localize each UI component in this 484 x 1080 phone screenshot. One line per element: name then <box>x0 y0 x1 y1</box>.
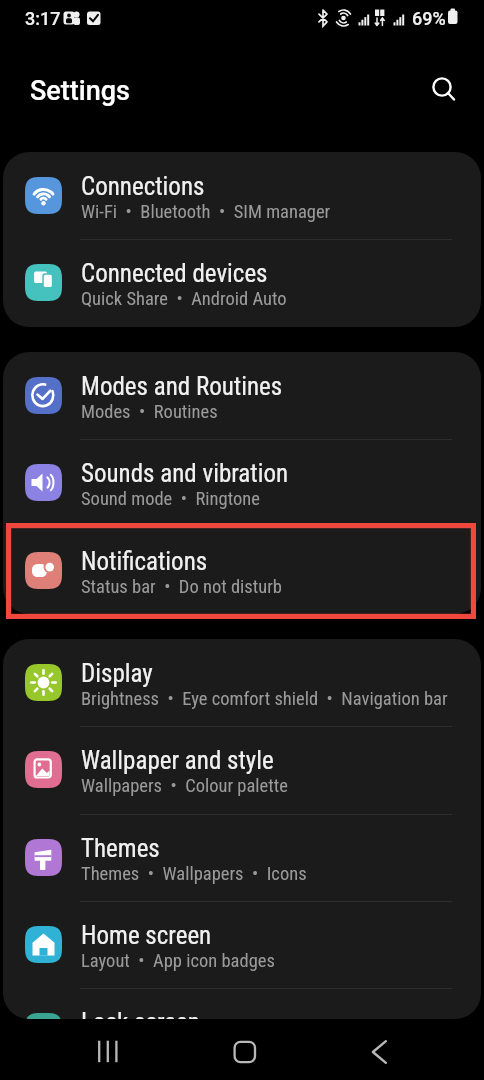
staticText: Wi-Fi • Bluetooth • SIM manager <box>81 201 331 223</box>
button[interactable]: Connections <box>3 152 481 239</box>
staticText: Layout • App icon badges <box>81 950 275 972</box>
staticText: Wallpapers • Colour palette <box>81 775 288 797</box>
staticText: Brightness • Eye comfort shield • Naviga… <box>81 688 448 710</box>
staticText: Notifications <box>81 547 208 576</box>
staticText: Home screen <box>81 921 212 950</box>
button[interactable]: Home screen <box>3 901 481 988</box>
staticText: Themes • Wallpapers • Icons <box>81 863 307 885</box>
staticText: Display <box>81 659 153 688</box>
button[interactable]: Notifications <box>3 527 481 614</box>
button[interactable]: Back <box>356 1030 400 1074</box>
staticText: Wallpaper and style <box>81 746 274 775</box>
staticText: 69% <box>412 8 446 29</box>
button[interactable]: Lock screen <box>3 988 481 1019</box>
staticText: Quick Share • Android Auto <box>81 288 287 310</box>
button[interactable]: Home <box>222 1030 266 1074</box>
staticText: Sound mode • Ringtone <box>81 488 260 510</box>
staticText: Themes <box>81 834 160 863</box>
staticText: Connected devices <box>81 259 268 288</box>
button[interactable]: Wallpaper and style <box>3 726 481 813</box>
staticText: Modes and Routines <box>81 372 283 401</box>
button[interactable]: Connected devices <box>3 239 481 326</box>
button[interactable]: Display <box>3 639 481 726</box>
button[interactable]: Modes and Routines <box>3 352 481 439</box>
staticText: Settings <box>30 75 130 107</box>
staticText: Modes • Routines <box>81 401 218 423</box>
staticText: Connections <box>81 172 205 201</box>
staticText: Sounds and vibration <box>81 459 289 488</box>
button[interactable]: Themes <box>3 814 481 901</box>
button[interactable]: Sounds and vibration <box>3 439 481 526</box>
staticText: 3:17 <box>25 8 61 29</box>
button[interactable]: Search <box>421 66 465 110</box>
button[interactable]: Recent apps <box>86 1030 130 1074</box>
staticText: Status bar • Do not disturb <box>81 576 282 598</box>
staticText: Lock screen <box>81 1008 200 1019</box>
